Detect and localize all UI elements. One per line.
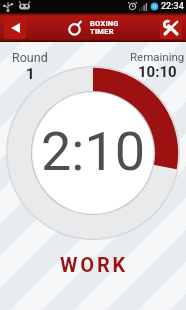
staticText: 2:10 (41, 120, 146, 183)
staticText: 1 (26, 65, 35, 83)
staticText: 10:10 (138, 63, 177, 81)
button[interactable]: Settings (160, 16, 182, 39)
staticText: 22:34 (161, 1, 184, 12)
staticText: BOXING (90, 19, 119, 28)
staticText: Round (12, 50, 48, 65)
button[interactable]: Back (4, 16, 26, 39)
staticText: Remaining (130, 50, 185, 63)
staticText: WORK (60, 253, 129, 276)
staticText: TIMER (90, 27, 114, 36)
